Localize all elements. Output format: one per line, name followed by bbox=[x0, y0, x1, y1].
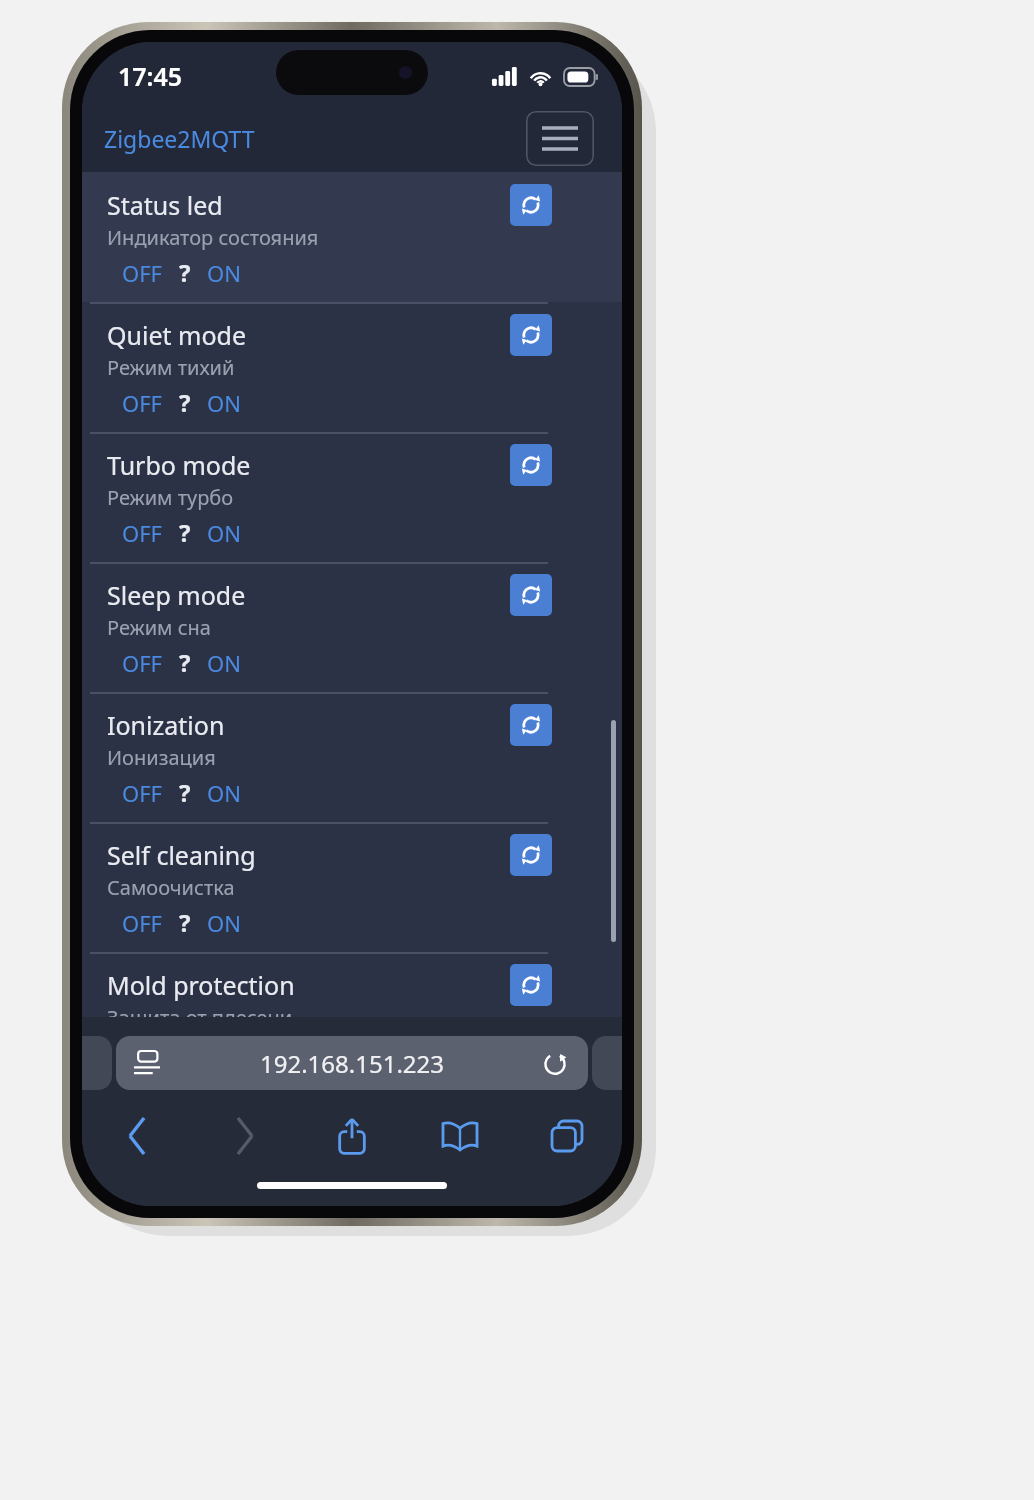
button[interactable]: Tabs bbox=[536, 1107, 598, 1165]
button[interactable]: Refresh bbox=[510, 964, 552, 1006]
staticText: ON bbox=[207, 648, 241, 678]
staticText: Режим тихий bbox=[107, 354, 235, 381]
button[interactable]: Page settings bbox=[130, 1046, 164, 1080]
staticText: ON bbox=[207, 388, 241, 418]
button[interactable]: 192.168.151.223 bbox=[116, 1036, 588, 1090]
staticText: ON bbox=[207, 908, 241, 938]
button[interactable]: Ionization bbox=[82, 692, 622, 822]
staticText: Ionization bbox=[107, 708, 225, 742]
button[interactable]: Refresh bbox=[510, 834, 552, 876]
button[interactable]: Mold protection bbox=[82, 952, 622, 1017]
staticText: OFF bbox=[122, 258, 163, 288]
button[interactable]: Sleep mode bbox=[82, 562, 622, 692]
button[interactable]: ON bbox=[207, 388, 241, 418]
staticText: Turbo mode bbox=[107, 448, 251, 482]
button[interactable]: Reload bbox=[538, 1046, 572, 1080]
button[interactable]: Share bbox=[321, 1107, 383, 1165]
button[interactable]: Bookmarks bbox=[429, 1107, 491, 1165]
button[interactable]: ON bbox=[207, 258, 241, 288]
staticText: Mold protection bbox=[107, 968, 295, 1002]
staticText: Самоочистка bbox=[107, 874, 235, 901]
button[interactable]: Refresh bbox=[510, 704, 552, 746]
staticText: ON bbox=[207, 778, 241, 808]
button[interactable]: Self cleaning bbox=[82, 822, 622, 952]
button[interactable]: OFF bbox=[122, 908, 163, 938]
button[interactable]: OFF bbox=[122, 258, 163, 288]
button[interactable]: OFF bbox=[122, 648, 163, 678]
staticText: Ионизация bbox=[107, 744, 216, 771]
button[interactable]: Forward bbox=[214, 1107, 276, 1165]
button[interactable]: OFF bbox=[122, 518, 163, 548]
staticText: ? bbox=[179, 386, 191, 419]
staticText: ? bbox=[179, 646, 191, 679]
button[interactable]: OFF bbox=[122, 388, 163, 418]
staticText: 192.168.151.223 bbox=[260, 1047, 445, 1080]
button[interactable]: Refresh bbox=[510, 444, 552, 486]
staticText: OFF bbox=[122, 908, 163, 938]
staticText: Индикатор состояния bbox=[107, 224, 319, 251]
staticText: 17:45 bbox=[118, 59, 183, 93]
staticText: ON bbox=[207, 518, 241, 548]
staticText: ? bbox=[179, 776, 191, 809]
staticText: ? bbox=[179, 516, 191, 549]
staticText: ? bbox=[179, 906, 191, 939]
staticText: Quiet mode bbox=[107, 318, 247, 352]
button[interactable]: Refresh bbox=[510, 314, 552, 356]
staticText: OFF bbox=[122, 518, 163, 548]
button[interactable]: ON bbox=[207, 778, 241, 808]
button[interactable]: Refresh bbox=[510, 574, 552, 616]
button[interactable]: Zigbee2MQTT bbox=[104, 123, 255, 154]
button[interactable]: Back bbox=[106, 1107, 168, 1165]
staticText: ? bbox=[179, 256, 191, 289]
button[interactable]: Status led bbox=[82, 172, 622, 302]
button[interactable]: ON bbox=[207, 518, 241, 548]
staticText: ON bbox=[207, 258, 241, 288]
staticText: Self cleaning bbox=[107, 838, 256, 872]
button[interactable]: OFF bbox=[122, 778, 163, 808]
staticText: OFF bbox=[122, 388, 163, 418]
button[interactable]: ON bbox=[207, 648, 241, 678]
button[interactable]: Quiet mode bbox=[82, 302, 622, 432]
staticText: Status led bbox=[107, 188, 223, 222]
button[interactable]: Turbo mode bbox=[82, 432, 622, 562]
staticText: OFF bbox=[122, 648, 163, 678]
staticText: Sleep mode bbox=[107, 578, 246, 612]
button[interactable]: ON bbox=[207, 908, 241, 938]
button[interactable]: Refresh bbox=[510, 184, 552, 226]
button[interactable]: Menu bbox=[526, 111, 594, 166]
staticText: OFF bbox=[122, 778, 163, 808]
staticText: Защита от плесени bbox=[107, 1004, 293, 1017]
staticText: Режим сна bbox=[107, 614, 211, 641]
staticText: Режим турбо bbox=[107, 484, 234, 511]
